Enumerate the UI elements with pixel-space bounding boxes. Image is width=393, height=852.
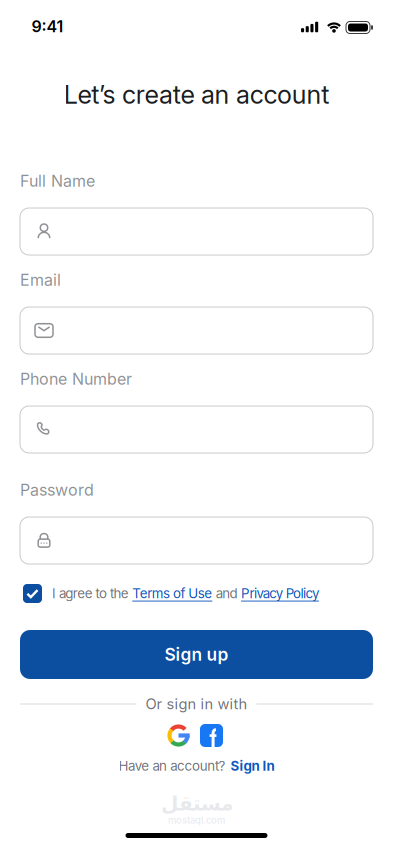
staticText: Sign In <box>230 758 274 774</box>
button[interactable] <box>20 307 373 354</box>
button[interactable] <box>20 517 373 564</box>
staticText: Email <box>20 271 61 289</box>
staticText: Have an account? <box>118 758 225 774</box>
button[interactable] <box>20 406 373 453</box>
staticText: Privacy Policy <box>241 586 319 601</box>
staticText: Full Name <box>20 172 95 190</box>
button[interactable]: Sign in with Google <box>167 724 190 747</box>
button[interactable]: Privacy Policy <box>241 586 319 601</box>
staticText: مستقل <box>160 792 232 815</box>
button[interactable]: Sign in with Facebook <box>200 724 223 747</box>
button[interactable]: Terms of Use <box>132 586 212 601</box>
staticText: and <box>212 586 241 601</box>
button[interactable] <box>20 208 373 255</box>
staticText: Phone Number <box>20 370 132 388</box>
staticText: Sign up <box>164 644 228 665</box>
staticText: 9:41 <box>31 17 63 36</box>
staticText: Terms of Use <box>132 586 212 601</box>
staticText: Password <box>20 481 94 499</box>
staticText: I agree to the <box>52 586 132 601</box>
button[interactable]: Sign up <box>20 630 373 679</box>
staticText: mostaql.com <box>168 815 225 826</box>
staticText: Or sign in with <box>145 695 247 713</box>
staticText: Let’s create an account <box>64 80 329 109</box>
button[interactable]: Sign In <box>230 758 274 774</box>
button[interactable]: Agree to terms <box>23 584 42 603</box>
